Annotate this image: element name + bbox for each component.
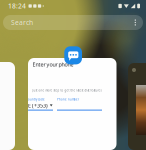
- staticText: Just one more step to get the latest cha…: [32, 89, 101, 92]
- staticText: Enter your phone: [32, 61, 73, 68]
- staticText: IE (+353): [26, 102, 48, 109]
- staticText: 18:24: [8, 2, 26, 10]
- staticText: Search: [11, 18, 33, 27]
- staticText: Country code: [26, 98, 45, 101]
- button[interactable]: Next app: [128, 63, 146, 150]
- button[interactable]: Search: [3, 15, 143, 30]
- button[interactable]: Enter your phone: [28, 58, 116, 150]
- staticText: Phone number: [57, 98, 79, 101]
- button[interactable]: Previous app: [0, 62, 15, 150]
